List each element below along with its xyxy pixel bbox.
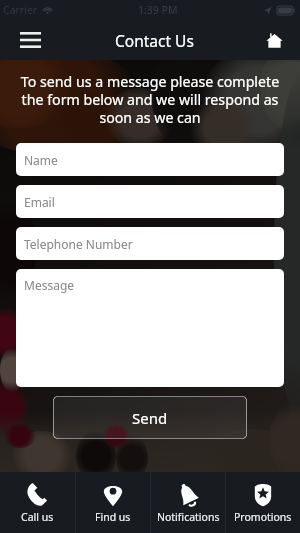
- staticText: Promotions: [234, 510, 292, 524]
- button[interactable]: Message: [16, 269, 284, 387]
- staticText: Name: [24, 152, 58, 168]
- staticText: Carrier: [3, 3, 38, 17]
- staticText: Call us: [21, 510, 54, 524]
- staticText: Find us: [95, 510, 131, 524]
- button[interactable]: Email: [16, 185, 284, 218]
- button[interactable]: Menu: [0, 20, 60, 60]
- button[interactable]: Name: [16, 143, 284, 176]
- staticText: Send: [132, 408, 168, 428]
- button[interactable]: Telephone Number: [16, 227, 284, 260]
- staticText: To send us a message please complete the…: [10, 72, 290, 127]
- button[interactable]: Find us: [76, 472, 150, 533]
- button[interactable]: Notifications: [151, 472, 225, 533]
- button[interactable]: Home: [248, 20, 300, 60]
- staticText: Contact Us: [115, 30, 194, 51]
- button[interactable]: Promotions: [226, 472, 300, 533]
- staticText: Message: [24, 277, 75, 293]
- staticText: Notifications: [157, 510, 220, 524]
- staticText: Telephone Number: [24, 236, 133, 252]
- button[interactable]: Send: [53, 396, 247, 439]
- staticText: Email: [24, 194, 55, 210]
- button[interactable]: Call us: [0, 472, 75, 533]
- staticText: 1:39 PM: [138, 3, 178, 17]
